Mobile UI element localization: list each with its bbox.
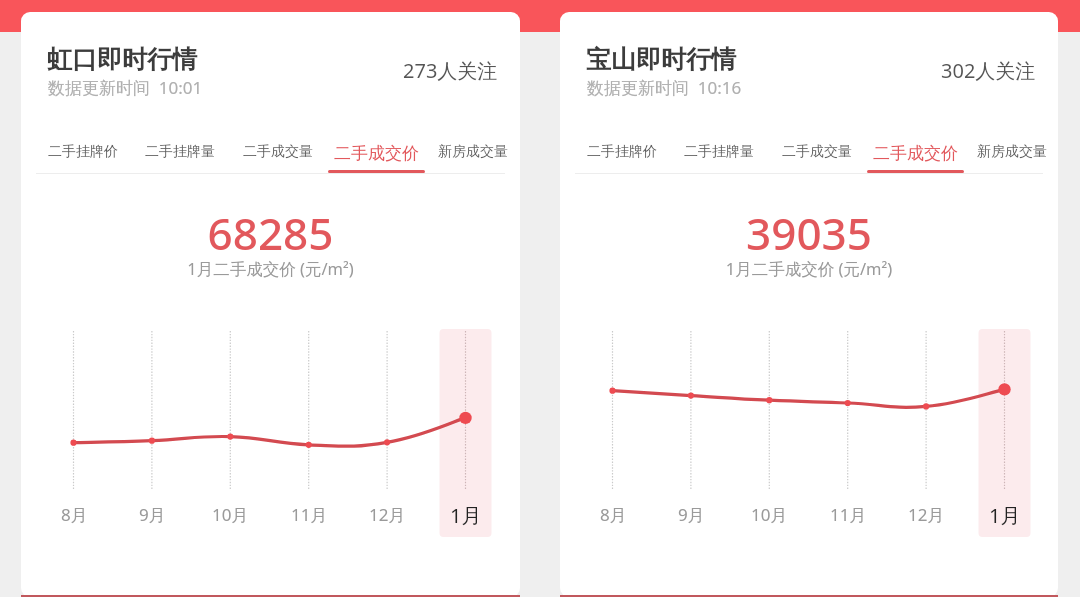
staticText: 宝山即时行情 [586, 44, 736, 75]
staticText: 1月二手成交价 (元/m²) [21, 257, 520, 280]
button[interactable]: 二手挂牌价 [28, 143, 138, 188]
staticText: 二手挂牌价 [48, 143, 118, 161]
staticText: 1月二手成交价 (元/m²) [560, 257, 1058, 280]
button[interactable]: 虹口即时行情 [21, 12, 520, 597]
staticText: 二手成交价 [873, 143, 958, 164]
staticText: 302人关注 [941, 57, 1036, 84]
staticText: 1月 [989, 502, 1021, 529]
button[interactable]: 二手挂牌量 [664, 143, 774, 188]
staticText: 新房成交量 [977, 143, 1047, 161]
button[interactable]: 新房成交量 [957, 143, 1058, 188]
staticText: 12月 [369, 503, 406, 526]
staticText: 68285 [21, 203, 520, 263]
staticText: 虹口即时行情 [47, 44, 197, 75]
staticText: 11月 [830, 503, 867, 526]
staticText: 11月 [291, 503, 328, 526]
button[interactable]: 二手成交价 [321, 143, 431, 188]
staticText: 数据更新时间 10:01 [48, 76, 203, 99]
staticText: 二手挂牌量 [684, 143, 754, 161]
staticText: 39035 [560, 203, 1058, 263]
button[interactable]: 二手成交量 [223, 143, 333, 188]
button[interactable]: 宝山即时行情 [560, 12, 1058, 597]
staticText: 二手成交价 [334, 143, 419, 164]
staticText: 二手挂牌价 [587, 143, 657, 161]
button[interactable]: 二手成交量 [762, 143, 872, 188]
button[interactable]: 二手成交价 [860, 143, 970, 188]
staticText: 9月 [139, 503, 166, 526]
staticText: 二手成交量 [782, 143, 852, 161]
staticText: 12月 [908, 503, 945, 526]
staticText: 1月 [450, 502, 482, 529]
button[interactable]: 新房成交量 [418, 143, 520, 188]
staticText: 10月 [751, 503, 788, 526]
staticText: 10月 [212, 503, 249, 526]
staticText: 273人关注 [403, 57, 498, 84]
staticText: 数据更新时间 10:16 [587, 76, 742, 99]
staticText: 8月 [600, 503, 627, 526]
staticText: 9月 [678, 503, 705, 526]
button[interactable]: 二手挂牌价 [567, 143, 677, 188]
staticText: 8月 [61, 503, 88, 526]
staticText: 二手挂牌量 [145, 143, 215, 161]
staticText: 二手成交量 [243, 143, 313, 161]
button[interactable]: 二手挂牌量 [125, 143, 235, 188]
staticText: 新房成交量 [438, 143, 508, 161]
